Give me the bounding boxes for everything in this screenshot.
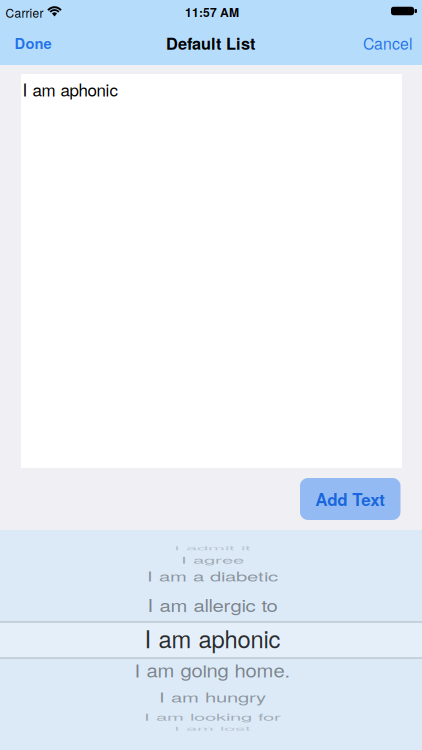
- staticText: I am aphonic: [22, 77, 117, 101]
- staticText: I am lost: [174, 714, 251, 743]
- staticText: Done: [14, 32, 51, 53]
- staticText: I am aphonic: [144, 621, 280, 655]
- staticText: I agree: [181, 545, 244, 574]
- staticText: Cancel: [363, 32, 412, 54]
- staticText: I admit it: [174, 533, 251, 562]
- staticText: I am a diabetic: [147, 561, 278, 590]
- staticText: 11:57 AM: [185, 3, 239, 21]
- button[interactable]: Add Text: [300, 478, 400, 520]
- staticText: I am looking for: [144, 702, 281, 731]
- staticText: Default List: [166, 31, 255, 55]
- button[interactable]: Cancel: [363, 32, 412, 54]
- staticText: I am allergic to: [147, 590, 277, 619]
- staticText: I am going home.: [134, 655, 290, 684]
- staticText: Carrier: [5, 4, 43, 21]
- button[interactable]: I am aphonic: [144, 621, 280, 655]
- staticText: I am hungry: [159, 682, 266, 711]
- staticText: Add Text: [315, 487, 385, 511]
- button[interactable]: Done: [14, 32, 51, 53]
